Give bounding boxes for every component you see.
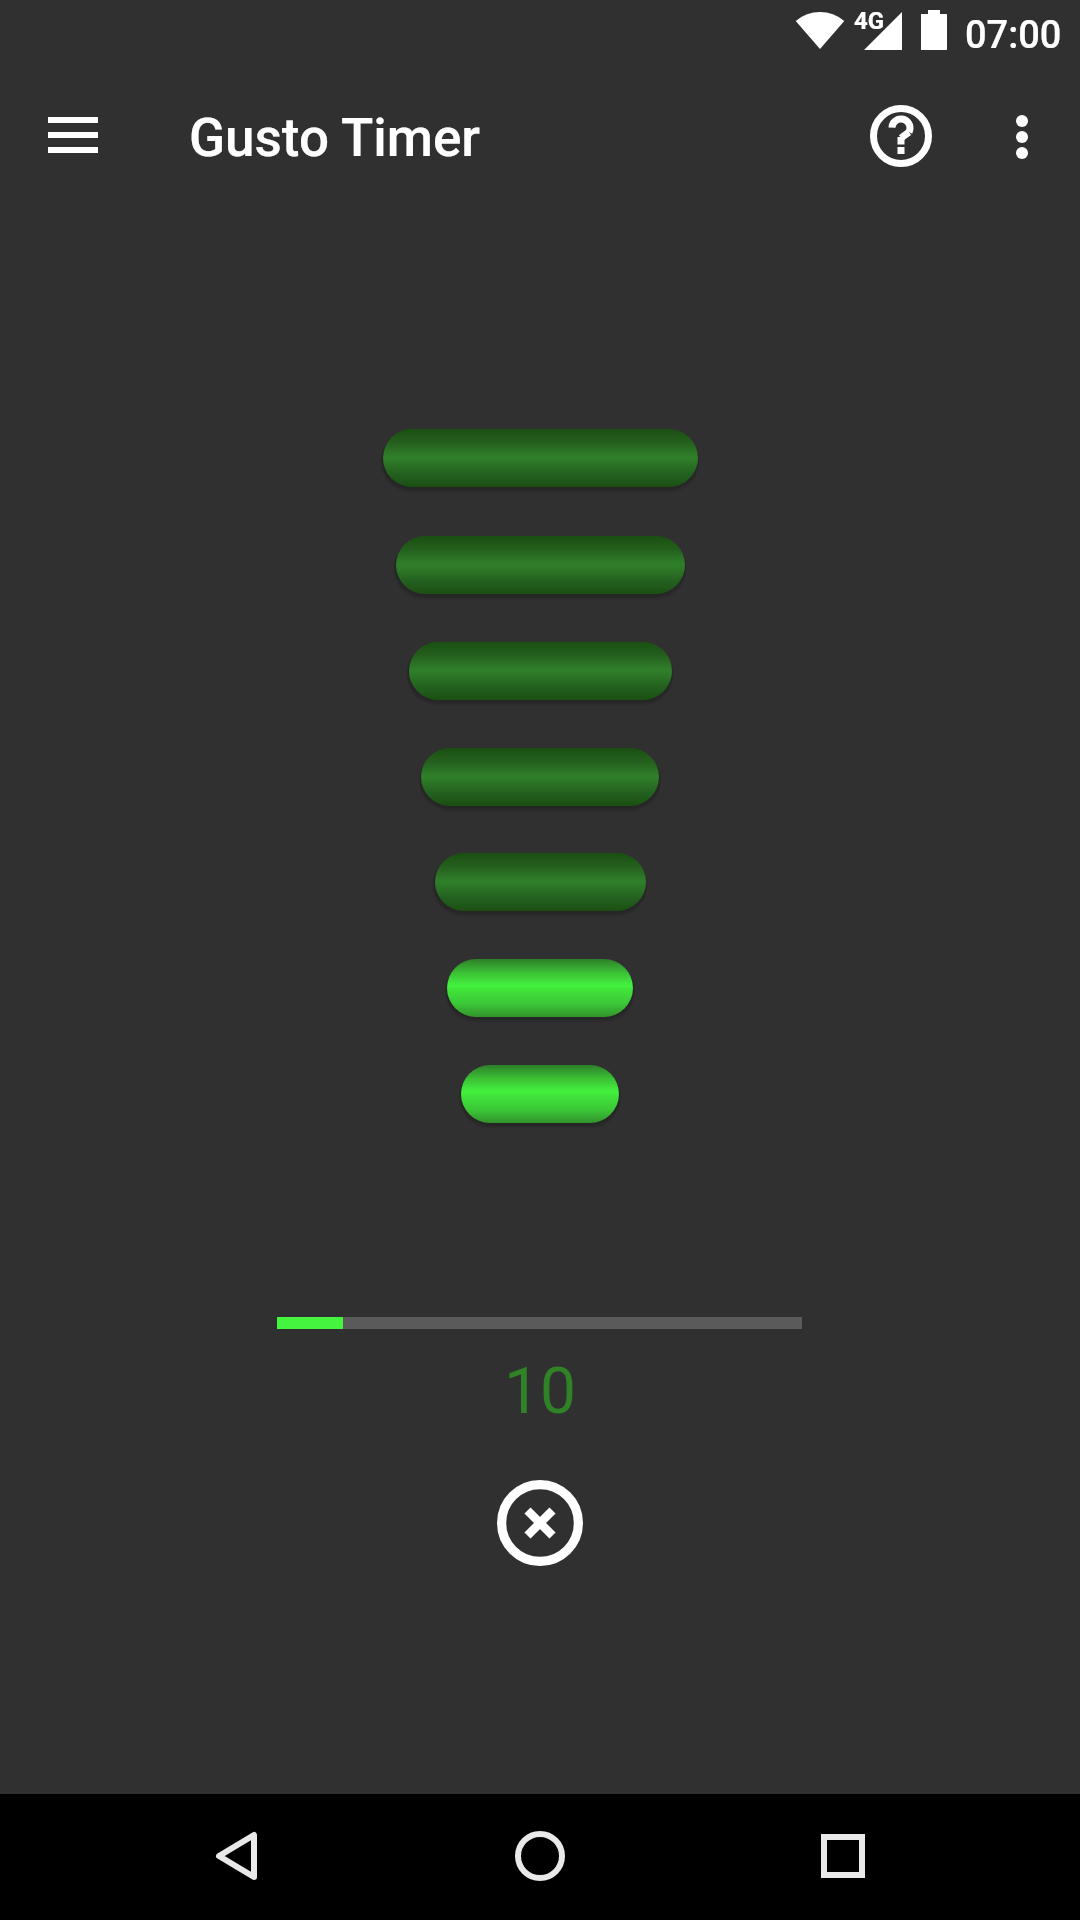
button[interactable]: Home [490, 1806, 590, 1906]
button[interactable] [447, 959, 633, 1017]
button[interactable]: Cancel timer [487, 1470, 593, 1576]
button[interactable] [421, 748, 659, 806]
staticText: 07:00 [965, 13, 1062, 58]
staticText: 4G [854, 7, 885, 35]
staticText: Gusto Timer [189, 107, 481, 169]
button[interactable] [435, 853, 646, 911]
button[interactable] [396, 536, 685, 594]
button[interactable] [461, 1065, 619, 1123]
button[interactable]: Back [186, 1806, 286, 1906]
button[interactable]: Help [853, 88, 949, 184]
button[interactable]: Recent apps [793, 1806, 893, 1906]
button[interactable]: Open navigation drawer [27, 89, 119, 181]
staticText: 10 [504, 1354, 576, 1429]
button[interactable] [383, 429, 698, 487]
button[interactable]: More options [974, 89, 1070, 185]
button[interactable] [409, 642, 672, 700]
